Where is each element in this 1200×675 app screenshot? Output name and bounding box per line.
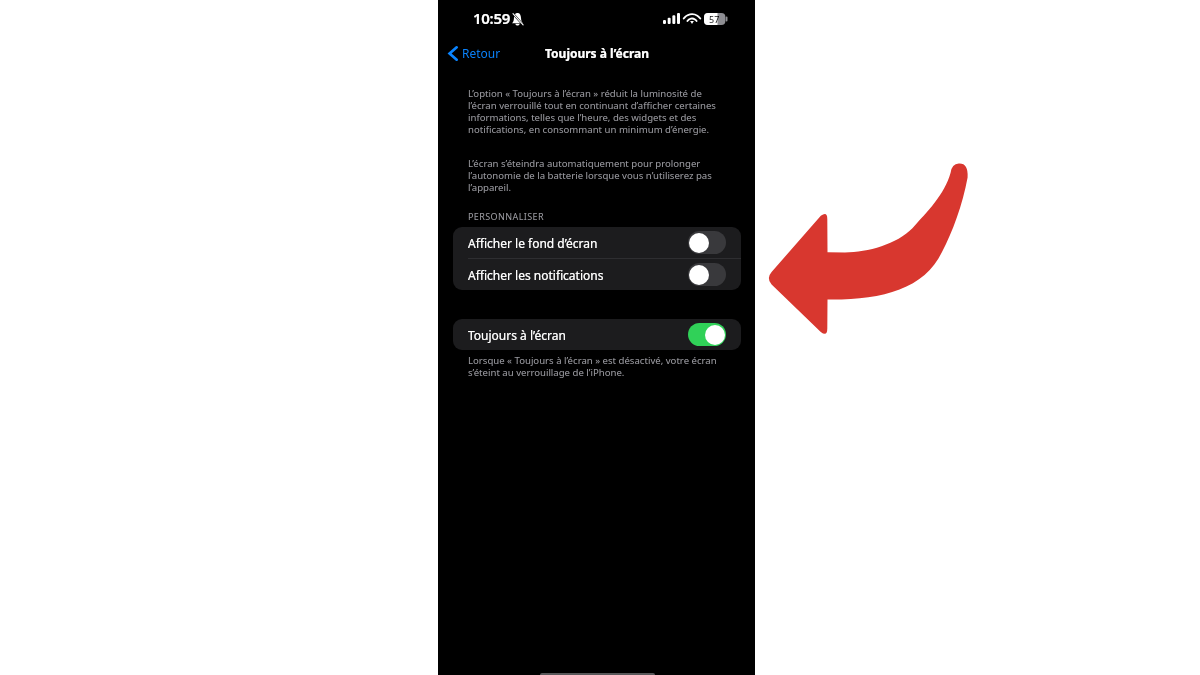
other: Wi-Fi [685,13,699,24]
other: Batterie 57 % [704,13,728,25]
staticText: 57 [709,13,720,25]
staticText: PERSONNALISER [468,210,544,222]
button[interactable]: Toujours à l’écran [453,319,741,350]
staticText: Retour [462,45,501,61]
staticText: L’écran s’éteindra automatiquement pour … [468,157,720,194]
button[interactable]: Afficher les notifications [453,259,741,290]
button[interactable]: Désactivé [688,231,726,254]
button[interactable]: Retour [444,43,509,63]
staticText: Toujours à l’écran [468,327,566,343]
staticText: Toujours à l’écran [545,45,650,61]
other: Mode silencieux [512,13,523,26]
staticText: L’option « Toujours à l’écran » réduit l… [468,87,720,136]
staticText: Afficher les notifications [468,267,604,283]
button[interactable]: Afficher le fond d’écran [453,227,741,258]
other: Flèche d’annotation [760,155,980,345]
button[interactable]: Activé [688,323,726,346]
button[interactable]: Désactivé [688,263,726,286]
staticText: Lorsque « Toujours à l’écran » est désac… [468,354,721,379]
staticText: 10:59 [473,8,510,28]
other: Signal cellulaire [663,13,680,24]
staticText: Afficher le fond d’écran [468,235,598,251]
